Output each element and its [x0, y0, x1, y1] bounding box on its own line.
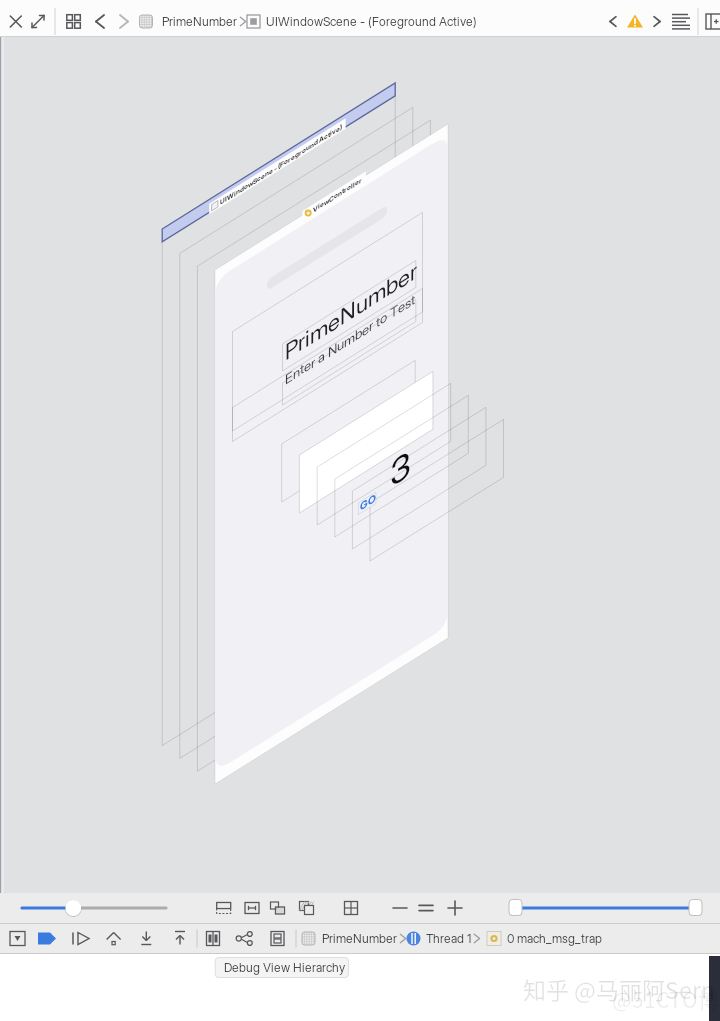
button[interactable]: Increase	[445, 898, 465, 919]
button[interactable]: Continue	[70, 928, 92, 949]
button[interactable]	[135, 5, 240, 31]
button[interactable]: Reset zoom	[416, 898, 436, 919]
button[interactable]: Show layers	[296, 898, 318, 919]
button[interactable]: Decrease	[390, 898, 410, 919]
button[interactable]: Depth range	[505, 899, 705, 919]
button[interactable]: Expand	[28, 7, 50, 29]
button[interactable]: Previous issue	[603, 7, 623, 29]
button[interactable]	[484, 927, 610, 951]
button[interactable]: Adjust view mode	[267, 898, 289, 919]
button[interactable]: Show constraints	[242, 898, 264, 919]
button[interactable]: Close	[5, 7, 27, 29]
button[interactable]: Show view hierarchy grid	[62, 7, 86, 29]
button[interactable]	[300, 927, 400, 951]
button[interactable]: Step into	[136, 928, 158, 949]
button[interactable]	[243, 5, 478, 31]
button[interactable]: Hide debug area	[8, 928, 29, 949]
button[interactable]: Debug memory graph	[267, 928, 289, 949]
button[interactable]: Toggle inspector	[702, 6, 720, 30]
button[interactable]: Simulate location	[202, 928, 224, 949]
button[interactable]: Deactivate breakpoints	[36, 928, 58, 949]
button[interactable]: Step over	[103, 928, 125, 949]
button[interactable]: Warnings	[625, 7, 645, 29]
button[interactable]: Back	[90, 7, 110, 29]
button[interactable]: Show clipped content	[213, 898, 235, 919]
button[interactable]: Orthographic mode	[341, 898, 363, 919]
button[interactable]: Filter	[668, 7, 694, 29]
button[interactable]	[404, 927, 474, 951]
button[interactable]: Debug view hierarchy	[234, 928, 256, 949]
button[interactable]: Step out	[169, 928, 191, 949]
button[interactable]: Next issue	[647, 7, 667, 29]
button[interactable]: Forward	[114, 7, 134, 29]
button[interactable]: Spacing slider	[18, 899, 170, 919]
